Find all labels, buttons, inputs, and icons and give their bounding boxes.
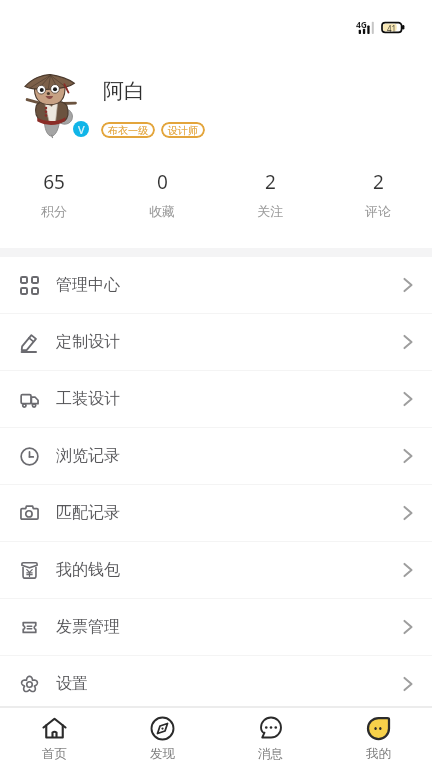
button[interactable]: 工装设计 xyxy=(0,371,432,427)
staticText: 2 xyxy=(373,169,384,195)
staticText: 我的钱包 xyxy=(56,560,120,580)
staticText: 2 xyxy=(265,169,276,195)
button[interactable]: Avatar xyxy=(24,74,77,138)
button[interactable]: 2 xyxy=(216,150,324,248)
staticText: 4G xyxy=(356,19,368,31)
button[interactable]: 定制设计 xyxy=(0,314,432,370)
button[interactable]: 浏览记录 xyxy=(0,428,432,484)
button[interactable]: 我的钱包 xyxy=(0,542,432,598)
button[interactable]: 布衣一级 xyxy=(101,122,155,138)
staticText: 发票管理 xyxy=(56,617,120,637)
staticText: 浏览记录 xyxy=(56,446,120,466)
button[interactable]: 设计师 xyxy=(161,122,205,138)
button[interactable]: 匹配记录 xyxy=(0,485,432,541)
staticText: 定制设计 xyxy=(56,332,120,352)
staticText: 65 xyxy=(43,169,65,195)
staticText: 阿白 xyxy=(103,78,145,104)
button[interactable]: 首页 xyxy=(0,708,108,768)
staticText: 0 xyxy=(157,169,168,195)
staticText: 设置 xyxy=(56,674,88,694)
staticText: 41 xyxy=(387,23,397,34)
staticText: 关注 xyxy=(257,203,283,219)
button[interactable]: 2 xyxy=(324,150,432,248)
staticText: 消息 xyxy=(258,746,283,762)
staticText: 管理中心 xyxy=(56,275,120,295)
staticText: 我的 xyxy=(366,746,391,762)
staticText: 发现 xyxy=(150,746,175,762)
staticText: 匹配记录 xyxy=(56,503,120,523)
staticText: 设计师 xyxy=(168,124,198,137)
button[interactable]: 我的 xyxy=(324,708,432,768)
staticText: 布衣一级 xyxy=(108,124,148,137)
staticText: 评论 xyxy=(365,203,391,219)
button[interactable]: 设置 xyxy=(0,656,432,712)
staticText: 积分 xyxy=(41,203,67,219)
button[interactable]: 发现 xyxy=(108,708,216,768)
button[interactable]: 65 xyxy=(0,150,108,248)
button[interactable]: 0 xyxy=(108,150,216,248)
button[interactable]: 消息 xyxy=(216,708,324,768)
button[interactable]: 发票管理 xyxy=(0,599,432,655)
staticText: 首页 xyxy=(42,746,67,762)
staticText: 收藏 xyxy=(149,203,175,219)
staticText: 工装设计 xyxy=(56,389,120,409)
button[interactable]: 管理中心 xyxy=(0,257,432,313)
staticText: V xyxy=(78,122,85,137)
